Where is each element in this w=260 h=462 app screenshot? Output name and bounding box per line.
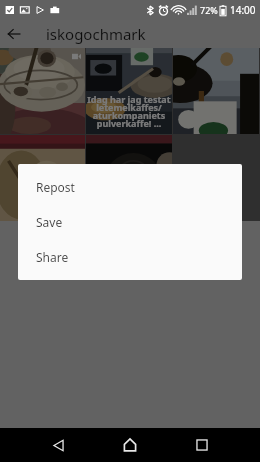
button[interactable]: Share [18, 239, 242, 274]
button[interactable]: Save [18, 204, 242, 239]
staticText: Repost [36, 179, 75, 195]
button[interactable] [0, 48, 85, 134]
button[interactable]: Repost [18, 169, 242, 204]
staticText: Share [36, 249, 69, 265]
button[interactable] [173, 48, 259, 134]
staticText: Idag har jag testat letemelkaffes/ aturk… [87, 93, 171, 129]
button[interactable]: Back [0, 20, 28, 48]
button[interactable]: Back [22, 428, 94, 462]
staticText: iskogochmark [46, 24, 146, 44]
staticText: 14:00 [230, 3, 256, 17]
button[interactable]: Idag har jag testat letemelkaffes/ aturk… [86, 48, 172, 134]
button[interactable] [86, 135, 172, 221]
staticText: Save [36, 214, 63, 230]
button[interactable]: Recent apps [166, 428, 238, 462]
button[interactable] [0, 135, 85, 221]
button[interactable]: Home [94, 428, 166, 462]
staticText: 72% [200, 4, 218, 16]
